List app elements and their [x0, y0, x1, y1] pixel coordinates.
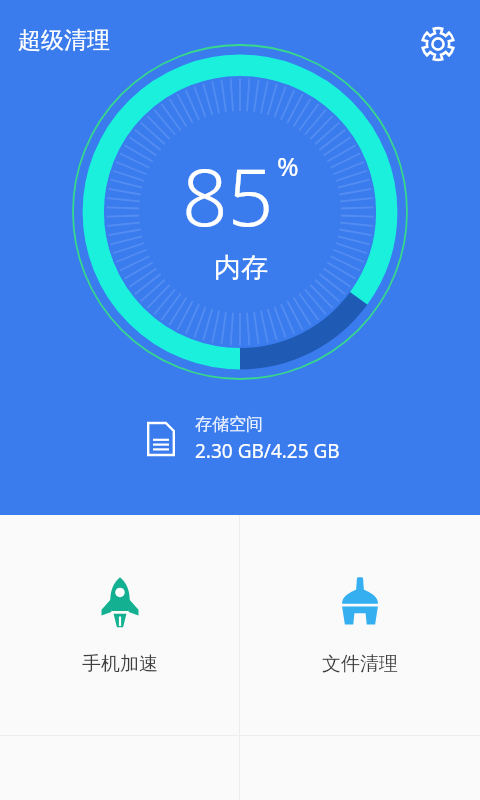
staticText: 内存 — [214, 251, 268, 285]
button[interactable]: 存储空间 — [0, 408, 480, 470]
button[interactable]: 超级清理 — [14, 22, 114, 59]
staticText: 85 — [182, 140, 274, 249]
staticText: 2.30 GB/4.25 GB — [195, 438, 340, 464]
staticText: 文件清理 — [322, 652, 398, 676]
button[interactable]: 文件清理 — [240, 515, 480, 735]
staticText: % — [277, 148, 299, 183]
button[interactable]: 手机加速 — [0, 515, 239, 735]
button[interactable]: Settings — [412, 18, 464, 70]
staticText: 存储空间 — [195, 414, 263, 435]
staticText: 手机加速 — [82, 652, 158, 676]
staticText: 超级清理 — [18, 26, 110, 55]
